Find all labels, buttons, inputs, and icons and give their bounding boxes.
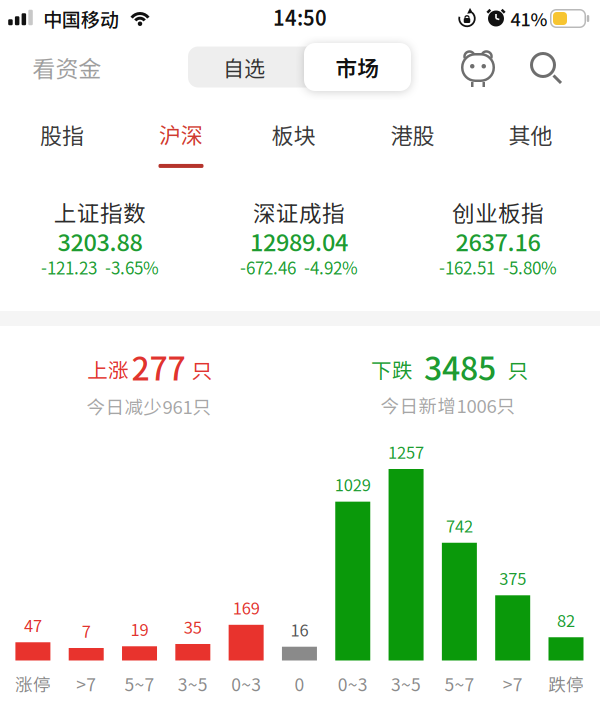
button[interactable]: 深证成指 <box>240 197 358 278</box>
button[interactable]: 其他 <box>508 119 552 150</box>
button[interactable]: 自选 <box>189 46 299 87</box>
staticText: 375 <box>499 566 526 590</box>
staticText: -121.23 -3.65% <box>41 255 159 279</box>
staticText: 自选 <box>223 52 265 82</box>
staticText: 跌停 <box>548 671 584 696</box>
staticText: 今日新增1006只 <box>380 392 515 418</box>
button[interactable]: 市场 <box>304 43 411 91</box>
button[interactable]: 沪深 <box>158 118 203 168</box>
staticText: 16 <box>290 617 308 641</box>
staticText: -672.46 -4.92% <box>240 255 358 279</box>
staticText: 板块 <box>271 119 315 150</box>
staticText: 14:50 <box>273 2 327 31</box>
button[interactable]: 上证指数 <box>41 197 159 278</box>
staticText: 只 <box>507 355 528 384</box>
staticText: 3~5 <box>391 671 421 696</box>
staticText: 港股 <box>390 119 434 150</box>
staticText: 股指 <box>40 119 84 150</box>
staticText: 其他 <box>508 119 552 150</box>
button[interactable]: 港股 <box>390 119 434 150</box>
staticText: 下跌 <box>371 354 413 384</box>
staticText: 47 <box>24 613 42 637</box>
staticText: -162.51 -5.80% <box>439 255 557 279</box>
staticText: 3485 <box>424 343 496 390</box>
staticText: 3~5 <box>178 671 208 696</box>
staticText: 5~7 <box>124 671 154 696</box>
staticText: 742 <box>446 513 473 537</box>
staticText: 41% <box>510 5 547 32</box>
staticText: 1029 <box>335 472 371 496</box>
staticText: 0 <box>294 671 304 696</box>
staticText: 82 <box>557 608 575 632</box>
staticText: 深证成指 <box>253 196 345 228</box>
staticText: 今日减少961只 <box>86 393 211 419</box>
button[interactable]: 创业板指 <box>439 197 557 278</box>
staticText: 0~3 <box>338 671 368 696</box>
button[interactable]: 搜索 <box>530 52 562 84</box>
button[interactable]: 看资金 <box>32 51 101 84</box>
button[interactable]: 板块 <box>271 119 315 150</box>
staticText: 2637.16 <box>455 224 540 258</box>
staticText: 12989.04 <box>250 224 348 258</box>
button[interactable]: 智能助手 <box>460 49 496 87</box>
staticText: 上涨 <box>87 354 129 384</box>
staticText: 涨停 <box>15 671 51 696</box>
staticText: 只 <box>191 355 212 384</box>
staticText: 中国移动 <box>43 5 119 32</box>
staticText: 35 <box>184 614 202 638</box>
staticText: 沪深 <box>159 118 203 150</box>
staticText: 5~7 <box>444 671 474 696</box>
staticText: 7 <box>82 619 91 642</box>
staticText: 169 <box>233 595 260 619</box>
staticText: >7 <box>503 671 523 696</box>
button[interactable]: 股指 <box>40 119 84 150</box>
staticText: 19 <box>130 617 148 641</box>
staticText: 看资金 <box>32 51 101 84</box>
staticText: >7 <box>76 671 96 696</box>
staticText: 市场 <box>335 51 379 82</box>
staticText: 0~3 <box>231 671 261 696</box>
staticText: 创业板指 <box>452 196 544 228</box>
staticText: 3203.88 <box>57 224 142 258</box>
staticText: 277 <box>131 343 185 390</box>
staticText: 上证指数 <box>54 196 146 228</box>
staticText: 1257 <box>388 440 424 463</box>
